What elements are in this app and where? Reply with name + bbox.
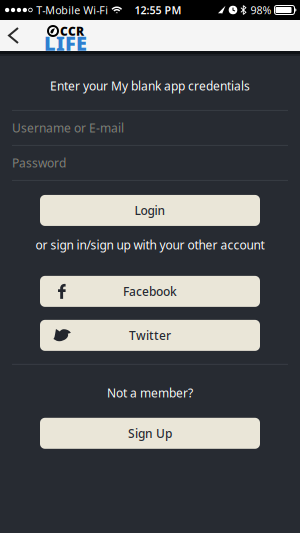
textField[interactable]: Username or E-mail xyxy=(12,120,288,136)
staticText: Not a member? xyxy=(107,385,193,401)
staticText: CCR xyxy=(60,23,84,39)
staticText: Password xyxy=(12,155,66,171)
staticText: Username or E-mail xyxy=(12,120,124,136)
staticText: Login xyxy=(134,202,165,218)
button[interactable]: Twitter xyxy=(40,320,260,351)
secureTextField[interactable]: Password xyxy=(12,155,288,171)
staticText: Facebook xyxy=(123,283,177,299)
button[interactable]: Sign Up xyxy=(40,418,260,449)
staticText: 98% xyxy=(250,3,271,17)
staticText: 12:55 PM xyxy=(134,3,181,17)
staticText: T-Mobile Wi-Fi xyxy=(36,3,108,17)
staticText: Twitter xyxy=(129,327,171,343)
staticText: or sign in/sign up with your other accou… xyxy=(35,237,264,253)
button[interactable]: Facebook xyxy=(40,276,260,307)
button[interactable]: Login xyxy=(40,195,260,226)
staticText: Sign Up xyxy=(128,425,172,441)
staticText: LIFE xyxy=(44,30,87,56)
button[interactable]: Back xyxy=(0,20,26,51)
staticText: Enter your My blank app credentials xyxy=(50,78,250,94)
button[interactable]: CCR LIFE xyxy=(44,22,87,48)
